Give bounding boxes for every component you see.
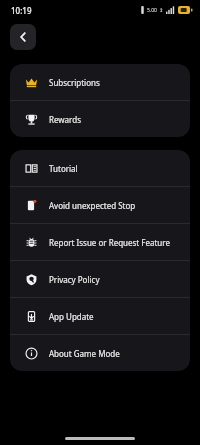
button[interactable]: Tutorial	[10, 150, 190, 186]
button[interactable]: Subscriptions	[10, 64, 190, 100]
staticText: App Update	[49, 311, 94, 322]
button[interactable]: Report Issue or Request Feature	[10, 224, 190, 260]
staticText: ↕	[159, 7, 164, 13]
staticText: 10:19	[11, 5, 32, 16]
button[interactable]: App Update	[10, 298, 190, 334]
button[interactable]: About Game Mode	[10, 335, 190, 371]
staticText: Subscriptions	[49, 77, 100, 88]
staticText: Tutorial	[49, 163, 78, 174]
button[interactable]: Avoid unexpected Stop	[10, 187, 190, 223]
staticText: 5.00	[147, 7, 157, 14]
staticText: About Game Mode	[49, 348, 120, 359]
staticText: Rewards	[49, 114, 81, 125]
button[interactable]: Privacy Policy	[10, 261, 190, 297]
button[interactable]: Rewards	[10, 101, 190, 137]
staticText: Privacy Policy	[49, 274, 100, 285]
button[interactable]: Back	[10, 24, 36, 50]
staticText: Avoid unexpected Stop	[49, 200, 136, 211]
staticText: Report Issue or Request Feature	[49, 237, 170, 248]
